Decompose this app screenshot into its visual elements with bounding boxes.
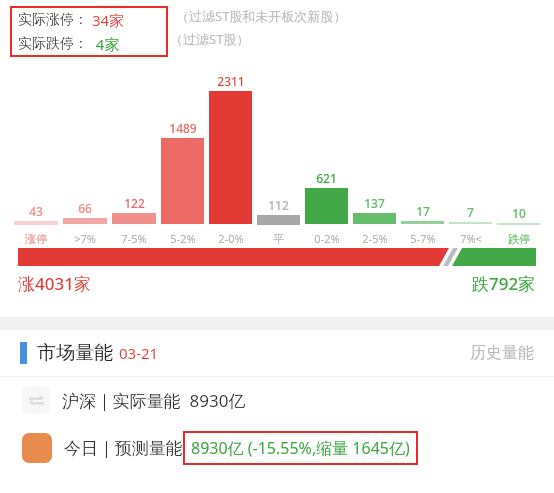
staticText: （过滤ST股和未开板次新股） <box>176 7 347 25</box>
staticText: 平 <box>273 232 284 246</box>
staticText: 66 <box>78 200 92 216</box>
staticText: 7%< <box>460 231 482 246</box>
staticText: 2-5% <box>362 231 388 246</box>
staticText: 实际涨停： <box>18 11 88 29</box>
staticText: 跌792家 <box>472 272 536 295</box>
staticText: 122 <box>124 195 145 211</box>
staticText: 涨停 <box>25 232 47 246</box>
staticText: 实际跌停： <box>18 35 88 53</box>
staticText: 34家 <box>88 10 125 30</box>
staticText: 8930亿 (-15.55%,缩量 1645亿) <box>191 437 410 459</box>
staticText: 沪深｜实际量能 8930亿 <box>62 389 246 412</box>
staticText: 4家 <box>88 34 120 54</box>
staticText: 2-0% <box>218 231 244 246</box>
button[interactable]: 市场量能 <box>0 330 554 376</box>
staticText: （过滤ST股） <box>170 30 250 48</box>
staticText: 03-21 <box>119 343 159 363</box>
staticText: 621 <box>316 170 337 186</box>
staticText: 10 <box>512 205 526 221</box>
staticText: 7 <box>467 204 474 220</box>
staticText: 5-2% <box>170 231 196 246</box>
staticText: 7-5% <box>121 231 147 246</box>
staticText: 5-7% <box>410 231 436 246</box>
staticText: 涨4031家 <box>18 272 91 295</box>
staticText: 2311 <box>217 73 245 89</box>
staticText: 112 <box>268 197 289 213</box>
staticText: 137 <box>364 195 385 211</box>
staticText: 跌停 <box>508 232 530 246</box>
staticText: 1489 <box>169 120 197 136</box>
button[interactable]: Exchange <box>0 377 554 423</box>
staticText: 17 <box>416 203 430 219</box>
staticText: 市场量能 <box>37 341 113 365</box>
other: Today <box>22 433 52 463</box>
button[interactable]: Today <box>0 423 554 473</box>
staticText: 历史量能 <box>470 343 534 363</box>
other: Exchange <box>22 386 50 414</box>
staticText: >7% <box>74 231 96 246</box>
staticText: 43 <box>29 203 43 219</box>
staticText: 0-2% <box>314 231 340 246</box>
staticText: 今日｜预测量能 <box>64 438 183 459</box>
